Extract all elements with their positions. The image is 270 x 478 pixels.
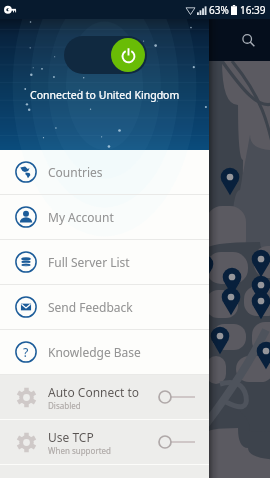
staticText: Countries xyxy=(48,164,103,180)
staticText: Use TCP xyxy=(48,429,94,445)
staticText: Connected to United Kingdom xyxy=(30,88,180,102)
button[interactable]: Disconnect VPN xyxy=(64,36,147,74)
staticText: Auto Connect to xyxy=(48,384,140,400)
staticText: Send Feedback xyxy=(48,299,133,315)
staticText: Disabled xyxy=(48,400,81,411)
staticText: Full Server List xyxy=(48,254,130,270)
button[interactable]: My Account xyxy=(0,195,209,239)
staticText: Knowledge Base xyxy=(48,344,141,360)
staticText: ? xyxy=(23,344,29,360)
staticText: 16:39 xyxy=(240,3,266,17)
button[interactable]: Countries xyxy=(0,150,209,194)
button[interactable]: Auto Connect to xyxy=(0,375,209,419)
button[interactable]: Use TCP xyxy=(0,420,209,464)
staticText: My Account xyxy=(48,209,114,225)
button[interactable]: Search xyxy=(233,25,263,55)
staticText: When supported xyxy=(48,445,111,456)
staticText: 63% xyxy=(209,3,229,17)
button[interactable]: Send Feedback xyxy=(0,285,209,329)
button[interactable]: ? xyxy=(0,330,209,374)
button[interactable]: Full Server List xyxy=(0,240,209,284)
